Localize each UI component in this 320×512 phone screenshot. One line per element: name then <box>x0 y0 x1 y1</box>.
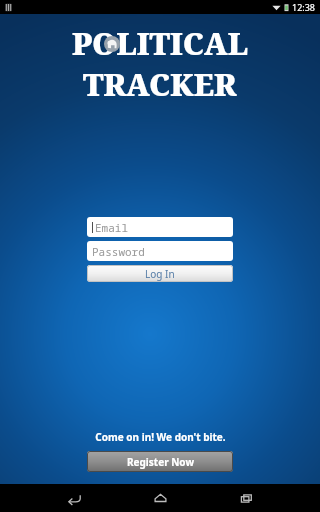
button[interactable]: Log In <box>87 265 233 282</box>
staticText: 12:38 <box>292 1 316 13</box>
staticText: Email <box>95 220 128 235</box>
staticText: Log In <box>145 267 175 281</box>
button[interactable]: Back <box>31 484 117 512</box>
staticText: TRACKER <box>83 64 237 105</box>
staticText: Password <box>92 244 145 259</box>
staticText: POLITICAL <box>72 23 249 64</box>
button[interactable]: Home <box>117 484 203 512</box>
staticText: Come on in! We don't bite. <box>95 430 226 444</box>
button[interactable]: Recent apps <box>203 484 289 512</box>
button[interactable]: Register Now <box>87 451 233 472</box>
staticText: Register Now <box>127 455 194 469</box>
button[interactable]: Email <box>87 217 233 237</box>
button[interactable]: Password <box>87 241 233 261</box>
